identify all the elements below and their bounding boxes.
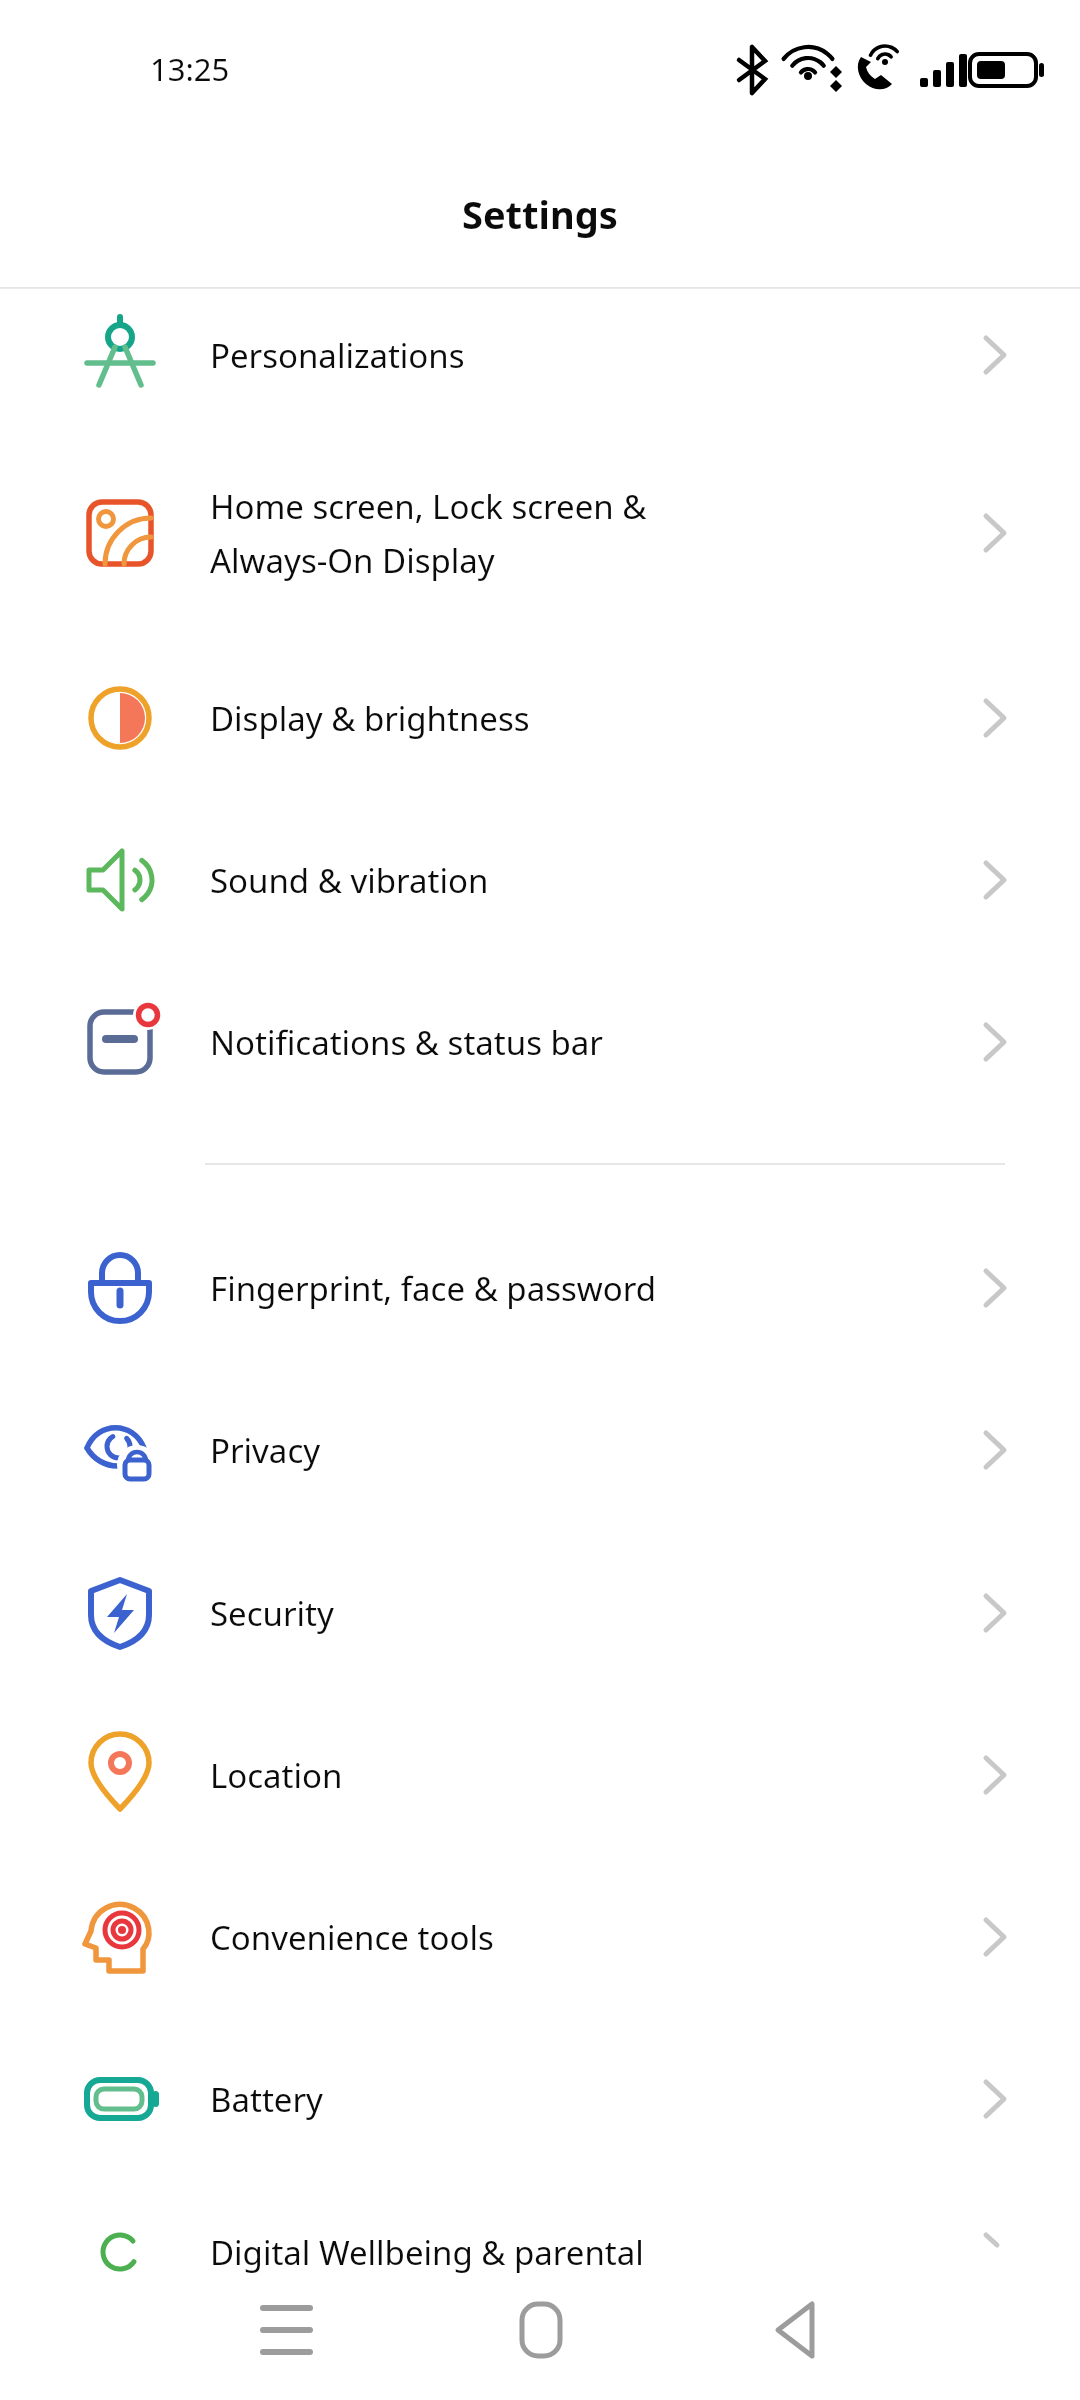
staticText: Security [210, 1591, 334, 1636]
button[interactable]: Back [778, 2265, 908, 2395]
button[interactable]: Convenience tools [0, 1856, 1080, 2018]
button[interactable]: Fingerprint, face & password [0, 1207, 1080, 1369]
staticText: 13:25 [150, 48, 230, 90]
button[interactable]: Recent apps [173, 2265, 303, 2395]
button[interactable]: Location [0, 1694, 1080, 1856]
button[interactable]: Display & brightness [0, 637, 1080, 799]
button[interactable]: Sound & vibration [0, 799, 1080, 961]
staticText: Convenience tools [210, 1915, 494, 1960]
staticText: Personalizations [210, 333, 465, 378]
staticText: Battery [210, 2077, 323, 2122]
staticText: Fingerprint, face & password [210, 1266, 656, 1311]
staticText: Privacy [210, 1428, 321, 1473]
button[interactable]: Battery [0, 2018, 1080, 2180]
staticText: Digital Wellbeing & parental [210, 2230, 644, 2275]
staticText: Always-On Display [210, 538, 495, 583]
button[interactable]: Home screen, Lock screen & [0, 433, 1080, 633]
staticText: Location [210, 1753, 343, 1798]
button[interactable]: Notifications & status bar [0, 961, 1080, 1123]
button[interactable]: Security [0, 1532, 1080, 1694]
staticText: Home screen, Lock screen & [210, 484, 647, 529]
button[interactable]: Privacy [0, 1369, 1080, 1531]
button[interactable]: Personalizations [0, 274, 1080, 436]
staticText: Sound & vibration [210, 858, 489, 903]
staticText: Settings [462, 188, 618, 240]
button[interactable]: Home [475, 2265, 605, 2395]
staticText: Display & brightness [210, 696, 530, 741]
button[interactable]: Digital Wellbeing & parental [0, 2171, 1080, 2333]
staticText: Notifications & status bar [210, 1020, 603, 1065]
